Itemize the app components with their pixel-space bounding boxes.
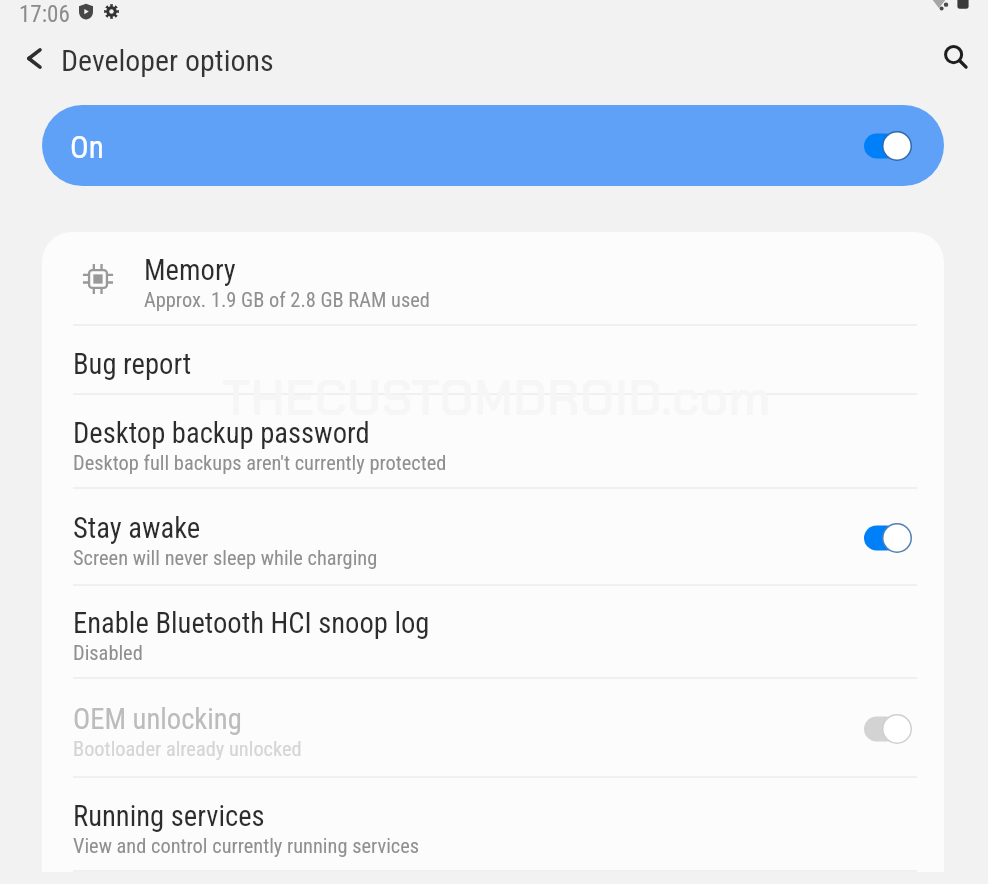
button[interactable]: Search (929, 30, 983, 84)
button[interactable]: Memory (42, 232, 944, 326)
staticText: Desktop backup password (73, 416, 370, 450)
staticText: OEM unlocking (73, 702, 242, 736)
button[interactable]: Back (3, 28, 64, 88)
button[interactable]: Running services (42, 778, 944, 872)
button[interactable]: OEM unlocking (42, 679, 944, 778)
staticText: 17:06 (19, 1, 70, 28)
staticText: Developer options (61, 43, 274, 78)
staticText: Disabled (73, 641, 143, 665)
button[interactable]: Desktop backup password (42, 395, 944, 489)
staticText: Bootloader already unlocked (73, 737, 302, 761)
staticText: View and control currently running servi… (73, 834, 420, 858)
button[interactable]: Enable Bluetooth HCI snoop log (42, 586, 944, 679)
button[interactable]: On (42, 105, 944, 186)
staticText: Bug report (73, 347, 192, 381)
staticText: Memory (144, 253, 236, 287)
button[interactable]: Bug report (42, 326, 944, 395)
staticText: Stay awake (73, 511, 201, 545)
staticText: Approx. 1.9 GB of 2.8 GB RAM used (144, 288, 430, 312)
staticText: Screen will never sleep while charging (73, 546, 378, 570)
staticText: Enable Bluetooth HCI snoop log (73, 606, 430, 640)
staticText: Desktop full backups aren't currently pr… (73, 451, 447, 475)
button[interactable]: Stay awake (42, 489, 944, 586)
staticText: THECUSTOMDROID.com (222, 366, 771, 430)
staticText: Running services (73, 799, 265, 833)
staticText: On (70, 129, 104, 165)
